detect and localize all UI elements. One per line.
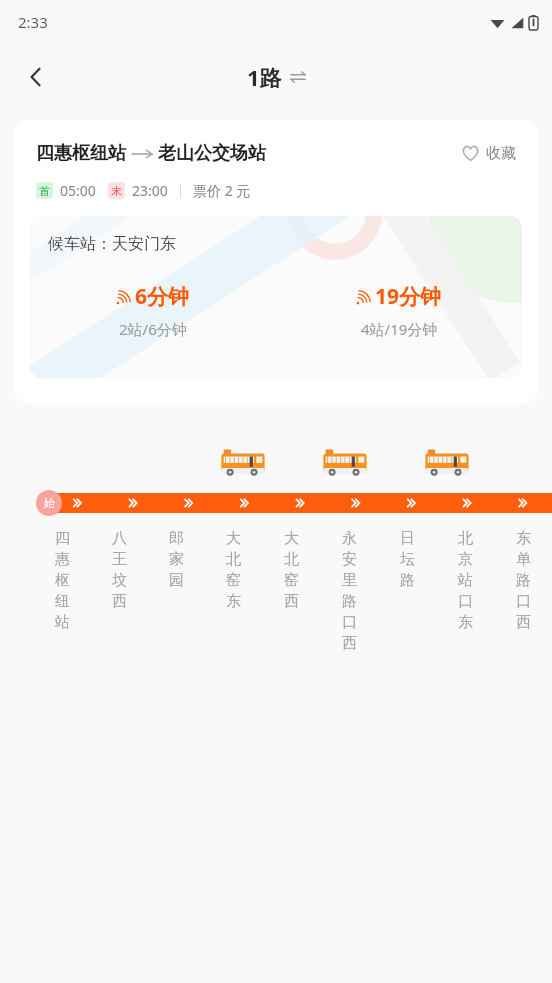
staticText: 老山公交场站 [158, 142, 266, 165]
staticText: 窑 [226, 571, 241, 590]
staticText: 西 [342, 634, 357, 653]
staticText: 纽 [55, 592, 70, 611]
staticText: 收藏 [486, 144, 516, 163]
staticText: 站 [458, 571, 473, 590]
staticText: 1路 [247, 62, 282, 92]
staticText: 站 [55, 613, 70, 632]
staticText: 票价 2 元 [193, 181, 251, 200]
staticText: 窑 [284, 571, 299, 590]
staticText: 东 [516, 529, 531, 548]
staticText: 口 [458, 592, 473, 611]
staticText: 王 [112, 550, 127, 569]
staticText: 首 [39, 184, 50, 198]
button[interactable]: 北 [436, 528, 494, 633]
staticText: 园 [169, 571, 184, 590]
staticText: 路 [400, 571, 415, 590]
button[interactable]: 郎 [148, 528, 205, 591]
staticText: 始 [44, 496, 55, 510]
button[interactable]: Back [12, 53, 60, 101]
staticText: 北 [458, 529, 473, 548]
staticText: 路 [342, 592, 357, 611]
button[interactable]: 日 [378, 528, 436, 591]
staticText: 候车站：天安门东 [48, 234, 176, 254]
staticText: 末 [111, 184, 122, 198]
staticText: 坛 [400, 550, 415, 569]
button[interactable]: 东 [494, 528, 552, 633]
staticText: 郎 [169, 529, 184, 548]
staticText: 日 [400, 529, 415, 548]
button[interactable]: 四 [34, 528, 91, 633]
staticText: 东 [226, 592, 241, 611]
staticText: 四惠枢纽站 [36, 142, 126, 165]
staticText: 口 [516, 592, 531, 611]
staticText: 家 [169, 550, 184, 569]
button[interactable]: 八 [91, 528, 148, 612]
staticText: 惠 [55, 550, 70, 569]
staticText: 6分钟 [135, 282, 190, 311]
staticText: 里 [342, 571, 357, 590]
staticText: 23:00 [132, 181, 168, 200]
button[interactable]: 大 [262, 528, 320, 612]
staticText: 大 [226, 529, 241, 548]
staticText: 八 [112, 529, 127, 548]
staticText: 京 [458, 550, 473, 569]
staticText: 枢 [55, 571, 70, 590]
staticText: 坟 [112, 571, 127, 590]
staticText: 四 [55, 529, 70, 548]
staticText: 东 [458, 613, 473, 632]
staticText: 西 [112, 592, 127, 611]
staticText: 2:33 [18, 12, 48, 32]
button[interactable]: 收藏 [461, 144, 516, 163]
button[interactable]: 1路 [247, 62, 306, 92]
staticText: 永 [342, 529, 357, 548]
staticText: 05:00 [60, 181, 96, 200]
staticText: 安 [342, 550, 357, 569]
staticText: 单 [516, 550, 531, 569]
staticText: 北 [284, 550, 299, 569]
staticText: 大 [284, 529, 299, 548]
staticText: 西 [516, 613, 531, 632]
button[interactable]: 永 [320, 528, 378, 654]
staticText: 2站/6分钟 [119, 319, 187, 339]
staticText: 19分钟 [375, 282, 442, 311]
staticText: 4站/19分钟 [361, 319, 438, 339]
staticText: 路 [516, 571, 531, 590]
button[interactable]: 6分钟 [30, 282, 276, 339]
button[interactable]: 始 [36, 490, 62, 516]
button[interactable]: 19分钟 [276, 282, 522, 339]
staticText: 西 [284, 592, 299, 611]
staticText: 北 [226, 550, 241, 569]
button[interactable]: 大 [205, 528, 262, 612]
staticText: 口 [342, 613, 357, 632]
